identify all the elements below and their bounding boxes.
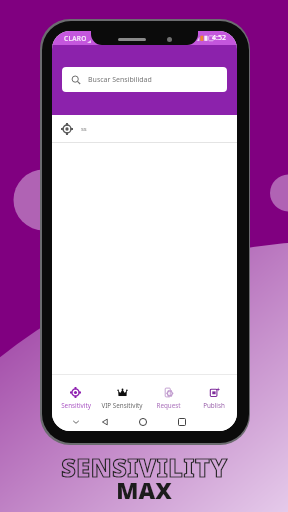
button[interactable]: ss: [52, 115, 237, 142]
button[interactable]: Back: [97, 414, 113, 430]
button[interactable]: VIP Sensitivity: [99, 377, 145, 410]
button[interactable]: Home: [135, 414, 151, 430]
staticText: CLARO: [64, 34, 87, 43]
staticText: Publish: [203, 401, 225, 410]
staticText: MAX: [116, 474, 172, 505]
staticText: Request: [156, 401, 181, 410]
button[interactable]: Request: [145, 377, 191, 410]
button[interactable]: Publish: [191, 377, 237, 410]
staticText: SENSIVILITY: [61, 450, 228, 484]
button[interactable]: Buscar Sensibilidad: [62, 67, 227, 92]
staticText: Sensitivity: [61, 401, 91, 410]
staticText: Buscar Sensibilidad: [88, 75, 152, 85]
button[interactable]: Hide keyboard: [68, 414, 84, 430]
staticText: 4:52: [212, 33, 226, 43]
staticText: VIP Sensitivity: [101, 401, 143, 410]
button[interactable]: Sensitivity: [52, 377, 99, 410]
button[interactable]: Recent apps: [174, 414, 190, 430]
staticText: ss: [81, 125, 87, 133]
